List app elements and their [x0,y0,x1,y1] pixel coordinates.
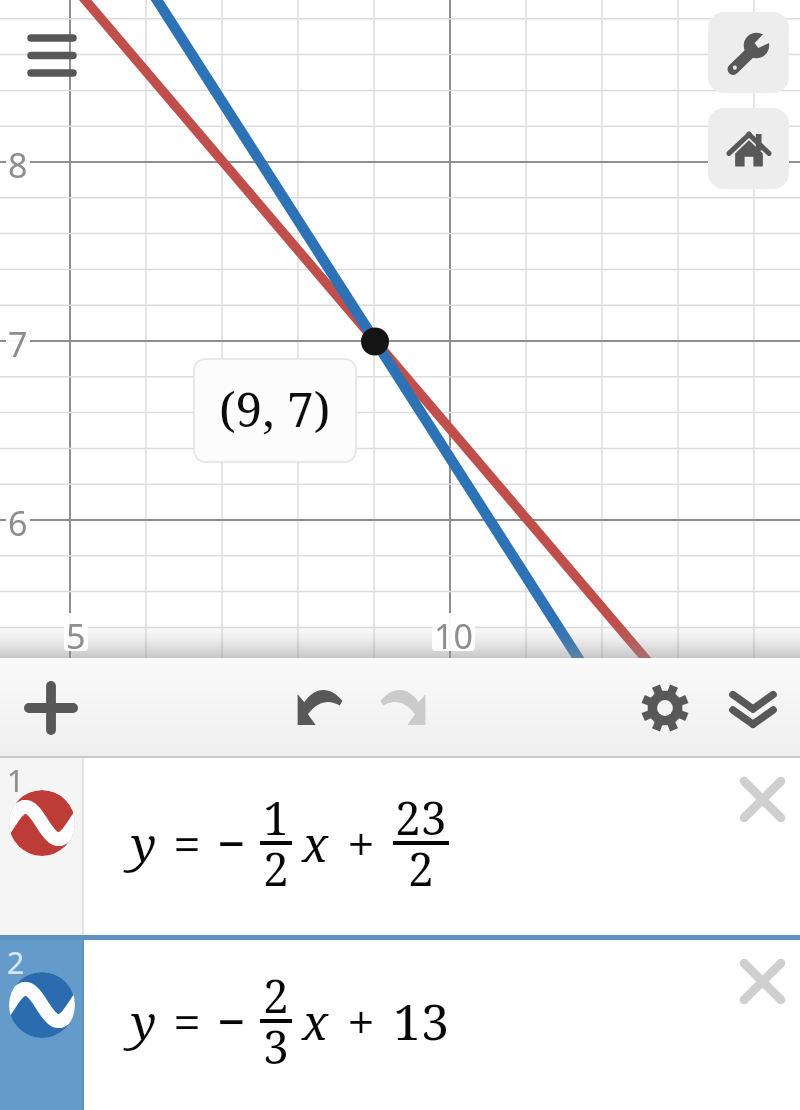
button[interactable]: Menu [24,30,82,80]
button[interactable]: Delete expression [725,762,799,836]
staticText: 13 [393,987,449,1055]
staticText: 2 [408,837,434,900]
staticText: 6 [8,500,28,540]
staticText: 2 [7,942,25,983]
staticText: − [217,987,246,1055]
staticText: 1 [7,760,25,801]
staticText: x [302,811,329,876]
button[interactable]: Delete expression [725,944,799,1018]
staticText: x [302,989,329,1054]
staticText: 7 [8,321,28,361]
staticText: 3 [263,1015,289,1078]
button[interactable]: Collapse [716,671,790,745]
button[interactable]: 1 [0,758,800,935]
button[interactable]: Tools [708,12,789,93]
button[interactable]: 2 [0,940,800,1110]
staticText: 2 [263,837,289,900]
button[interactable]: Add expression [14,671,88,745]
staticText: 23 [395,786,447,849]
staticText: + [347,809,375,877]
staticText: 1 [263,786,289,849]
staticText: = [173,987,201,1055]
staticText: 10 [434,613,473,651]
staticText: 5 [66,613,86,651]
staticText: 2 [263,964,289,1027]
button[interactable]: Redo [367,671,441,745]
button[interactable]: Settings [628,671,702,745]
button[interactable]: Home [708,108,789,189]
staticText: + [347,987,375,1055]
staticText: y [131,811,157,876]
button[interactable]: (9, 7) [193,358,357,463]
staticText: = [173,809,201,877]
button[interactable]: Undo [282,671,356,745]
staticText: 8 [8,142,28,182]
staticText: (9, 7) [219,376,331,441]
staticText: − [217,809,246,877]
staticText: y [131,989,157,1054]
